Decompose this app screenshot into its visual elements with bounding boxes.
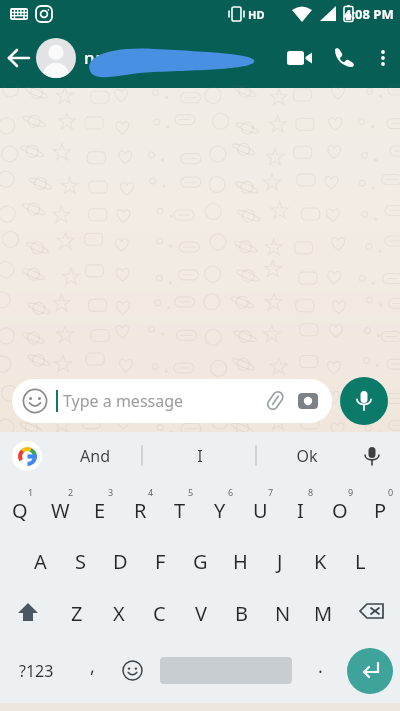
staticText: 3 [108, 486, 114, 498]
button[interactable]: M [303, 587, 344, 639]
staticText: , [90, 654, 95, 679]
button[interactable]: Video call [276, 28, 322, 88]
staticText: P [374, 497, 387, 524]
staticText: U [253, 497, 268, 524]
staticText: Z [71, 600, 83, 627]
button[interactable]: L [340, 535, 380, 587]
button[interactable]: C [139, 587, 180, 639]
staticText: F [155, 548, 166, 575]
button[interactable]: J [260, 535, 300, 587]
button[interactable]: D [100, 535, 140, 587]
staticText: I [297, 497, 304, 524]
staticText: Ok [296, 445, 318, 467]
button[interactable]: K [300, 535, 340, 587]
button[interactable]: B [221, 587, 262, 639]
button[interactable]: W [40, 479, 80, 535]
button[interactable]: . [300, 639, 340, 702]
button[interactable]: Google [12, 441, 42, 471]
staticText: And [80, 445, 110, 467]
staticText: 0 [388, 486, 394, 498]
button[interactable]: Emoji [112, 639, 152, 702]
staticText: 2 [68, 486, 74, 498]
button[interactable]: Ok [262, 432, 352, 479]
button[interactable]: U [240, 479, 280, 535]
button[interactable]: Voice message [340, 377, 388, 425]
staticText: 6 [228, 486, 234, 498]
staticText: 4:08 PM [344, 5, 394, 23]
button[interactable]: G [180, 535, 220, 587]
staticText: S [75, 548, 86, 575]
button[interactable]: Z [56, 587, 98, 639]
button[interactable]: S [60, 535, 100, 587]
staticText: 8 [308, 486, 314, 498]
button[interactable]: Attach [260, 386, 290, 416]
staticText: G [193, 548, 208, 575]
button[interactable]: Shift [0, 587, 56, 639]
staticText: J [277, 548, 283, 575]
staticText: name [84, 46, 131, 69]
staticText: 1 [28, 486, 34, 498]
button[interactable]: V [180, 587, 221, 639]
button[interactable]: N [262, 587, 303, 639]
button[interactable]: P [360, 479, 400, 535]
button[interactable]: Back [0, 28, 36, 88]
staticText: V [195, 600, 207, 627]
staticText: . [318, 654, 323, 679]
staticText: C [153, 600, 166, 627]
staticText: O [332, 497, 348, 524]
staticText: N [275, 600, 291, 627]
staticText: I [197, 445, 203, 467]
button[interactable]: Camera [294, 387, 322, 415]
button[interactable]: Backspace [344, 587, 400, 639]
button[interactable]: A [20, 535, 60, 587]
button[interactable]: Enter [347, 648, 393, 694]
button[interactable]: F [140, 535, 180, 587]
button[interactable]: T [160, 479, 200, 535]
staticText: T [174, 497, 186, 524]
staticText: A [34, 548, 47, 575]
button[interactable]: E [80, 479, 120, 535]
staticText: L [355, 548, 366, 575]
staticText: K [314, 548, 327, 575]
button[interactable]: I [280, 479, 320, 535]
button[interactable]: ?123 [0, 639, 72, 702]
staticText: M [314, 600, 333, 627]
button[interactable]: , [72, 639, 112, 702]
button[interactable]: Type a message [12, 379, 332, 423]
staticText: W [51, 497, 70, 524]
button[interactable]: Voice input [356, 440, 388, 472]
staticText: Type a message [63, 390, 260, 412]
staticText: X [113, 600, 125, 627]
staticText: ?123 [19, 660, 54, 682]
staticText: HD [248, 7, 265, 22]
button[interactable]: name [36, 28, 276, 88]
button[interactable]: I [155, 432, 245, 479]
button[interactable]: More options [366, 28, 400, 88]
staticText: Q [12, 497, 28, 524]
staticText: 9 [348, 486, 354, 498]
staticText: H [233, 548, 248, 575]
button[interactable]: H [220, 535, 260, 587]
button[interactable]: Y [200, 479, 240, 535]
staticText: D [113, 548, 128, 575]
button[interactable]: X [98, 587, 139, 639]
staticText: E [94, 497, 106, 524]
button[interactable]: O [320, 479, 360, 535]
staticText: 5 [188, 486, 194, 498]
staticText: 4 [148, 486, 154, 498]
staticText: R [134, 497, 147, 524]
staticText: B [235, 600, 248, 627]
button[interactable]: Voice call [322, 28, 366, 88]
staticText: 7 [268, 486, 274, 498]
button[interactable]: Q [0, 479, 40, 535]
button[interactable]: R [120, 479, 160, 535]
staticText: Y [214, 497, 226, 524]
button[interactable]: And [50, 432, 140, 479]
